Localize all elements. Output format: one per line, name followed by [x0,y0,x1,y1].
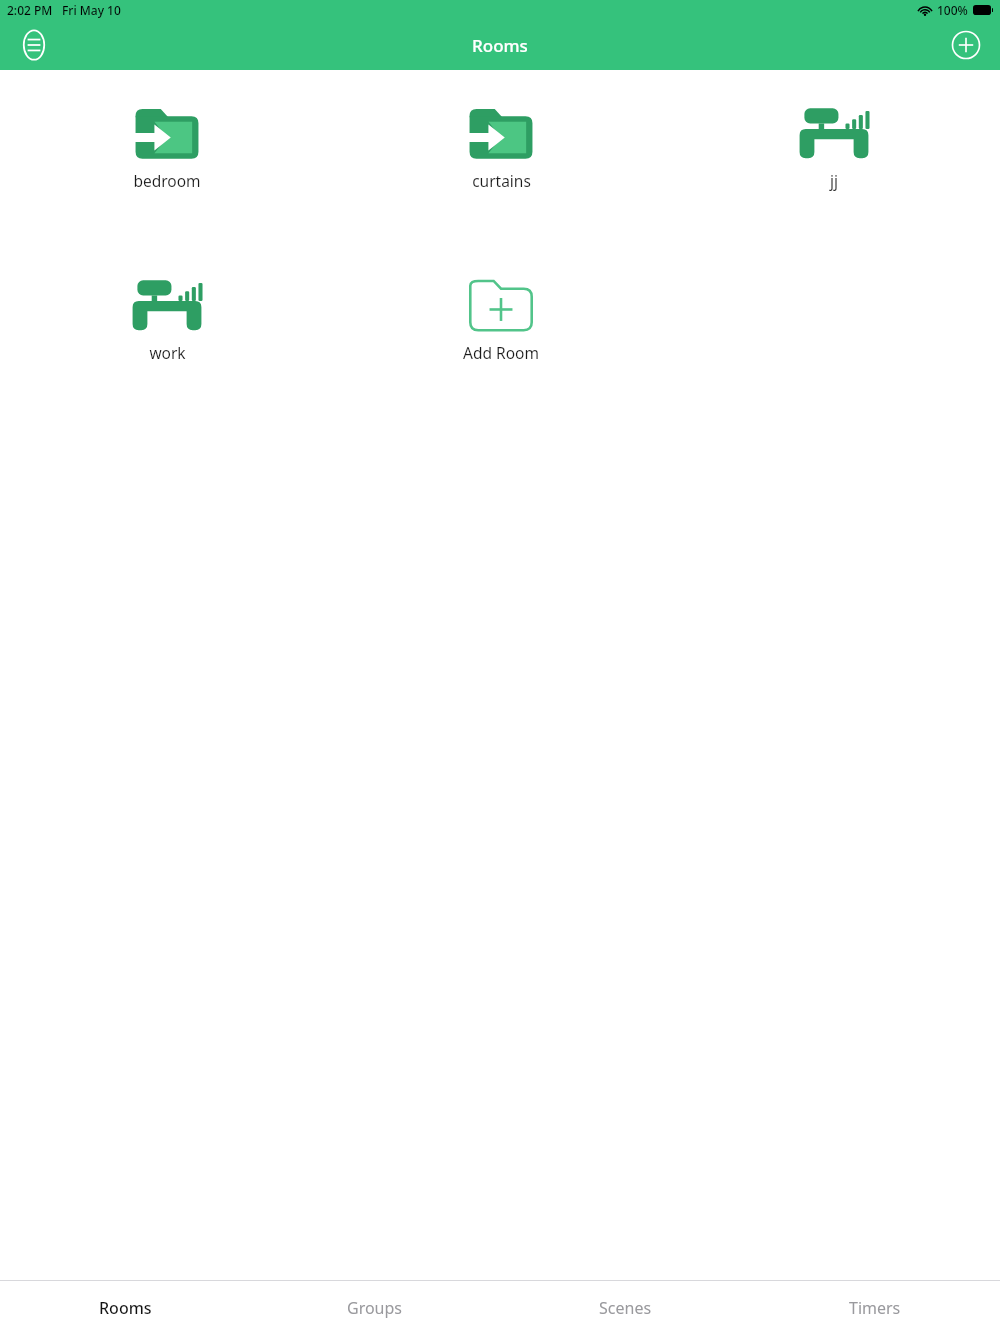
button[interactable]: Menu [12,23,56,67]
staticText: 100% [937,2,968,18]
button[interactable]: Timers [750,1281,1000,1334]
staticText: bedroom [133,170,201,191]
button[interactable]: Add [944,23,988,67]
staticText: Timers [849,1297,901,1319]
button[interactable]: Scenes [500,1281,750,1334]
staticText: curtains [472,170,531,191]
staticText: Groups [347,1297,403,1319]
staticText: Rooms [99,1297,152,1319]
staticText: 2:02 PM [7,2,53,18]
staticText: Rooms [472,34,528,57]
button[interactable]: Groups [250,1281,500,1334]
button[interactable]: Add Room [426,275,576,365]
button[interactable]: jj [759,103,909,193]
staticText: Add Room [463,342,539,363]
staticText: Scenes [599,1297,652,1319]
button[interactable]: bedroom [92,103,242,193]
button[interactable]: Rooms [0,1281,250,1334]
staticText: jj [830,170,838,191]
staticText: work [149,342,186,363]
button[interactable]: work [92,275,242,365]
staticText: Fri May 10 [62,2,121,18]
button[interactable]: curtains [426,103,576,193]
